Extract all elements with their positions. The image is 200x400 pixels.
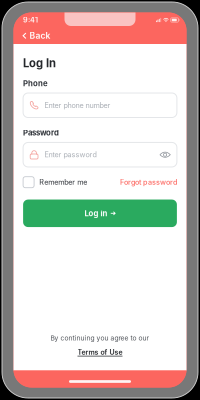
- staticText: Back: [30, 31, 51, 41]
- staticText: Password: [23, 128, 59, 137]
- button[interactable]: Remember me: [23, 177, 87, 188]
- staticText: Remember me: [39, 178, 87, 187]
- staticText: 9:41: [23, 16, 38, 24]
- staticText: Log in: [85, 209, 108, 218]
- staticText: Enter phone number: [45, 101, 111, 110]
- staticText: Phone: [23, 79, 48, 88]
- staticText: Terms of Use: [77, 348, 122, 356]
- button[interactable]: Forgot password: [120, 178, 177, 187]
- staticText: By continuing you agree to our: [50, 334, 149, 342]
- button[interactable]: Terms of Use: [77, 348, 122, 356]
- button[interactable]: Log in: [23, 200, 177, 227]
- staticText: Log In: [23, 56, 56, 70]
- staticText: Enter password: [45, 150, 97, 159]
- button[interactable]: Back: [22, 28, 55, 44]
- staticText: Forgot password: [120, 178, 177, 187]
